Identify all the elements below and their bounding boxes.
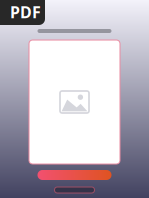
- button[interactable]: Primary action: [37, 170, 111, 180]
- staticText: PDF: [10, 1, 41, 23]
- button[interactable]: Secondary action: [54, 187, 94, 193]
